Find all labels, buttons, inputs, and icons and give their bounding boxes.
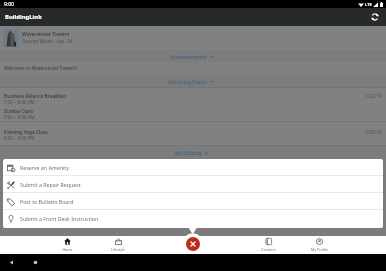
staticText: Waterstreet Towers — [22, 31, 70, 38]
staticText: Submit a Front Desk Instruction — [20, 215, 99, 222]
staticText: Evening Yoga Class — [4, 129, 48, 136]
button[interactable]: Welcome to Waterstreet Towers! — [0, 62, 386, 75]
staticText: Reserve an Amenity — [20, 164, 69, 171]
staticText: Post to Bulletin Board — [20, 198, 74, 205]
button[interactable]: Refresh — [368, 10, 382, 24]
staticText: Zumba Class — [4, 108, 34, 115]
button[interactable]: Close menu — [186, 237, 200, 251]
button[interactable]: My Profile — [297, 236, 341, 254]
button[interactable]: Contacts — [246, 236, 290, 254]
button[interactable]: Submit a Front Desk Instruction — [3, 210, 383, 226]
button[interactable]: Zumba Class — [0, 108, 386, 119]
staticText: LTE — [365, 2, 372, 7]
button[interactable]: Post to Bulletin Board — [3, 193, 383, 209]
staticText: 9:00 — [4, 1, 14, 8]
staticText: 7/25/19 — [365, 129, 382, 135]
button[interactable]: Waterstreet Towers — [0, 26, 386, 50]
staticText: Home — [62, 247, 73, 252]
staticText: BuildingLink — [5, 13, 42, 21]
button[interactable]: Reserve an Amenity — [3, 159, 383, 175]
button[interactable]: Home — [45, 236, 89, 254]
button[interactable]: Home — [32, 259, 39, 266]
staticText: 7/22/19 — [365, 93, 382, 99]
button[interactable]: Evening Yoga Class — [0, 129, 386, 140]
button[interactable]: Submit a Repair Request — [3, 176, 383, 192]
staticText: 8:00 – 9:00 PM — [4, 135, 35, 141]
staticText: Business Alliance Breakfast — [4, 93, 67, 100]
staticText: 7:30 – 8:30 AM — [4, 99, 35, 105]
staticText: Upcoming Events — [168, 79, 208, 85]
button[interactable]: Business Alliance Breakfast — [0, 93, 386, 104]
button[interactable]: Lifestyle — [96, 236, 140, 254]
button[interactable]: Upcoming Events — [0, 75, 386, 87]
staticText: Welcome to Waterstreet Towers! — [4, 65, 77, 72]
staticText: Announcements — [170, 54, 207, 60]
button[interactable]: My Building — [0, 146, 386, 158]
staticText: George Walsh - Apt. 2A — [22, 38, 73, 44]
staticText: Submit a Repair Request — [20, 181, 81, 188]
staticText: 9:00 – 9:30 AM — [4, 114, 35, 120]
staticText: My Building — [175, 150, 202, 156]
staticText: My Profile — [311, 247, 328, 252]
button[interactable]: Announcements — [0, 50, 386, 62]
button[interactable]: Back — [8, 259, 15, 266]
staticText: Lifestyle — [111, 247, 125, 252]
staticText: Contacts — [261, 247, 276, 252]
